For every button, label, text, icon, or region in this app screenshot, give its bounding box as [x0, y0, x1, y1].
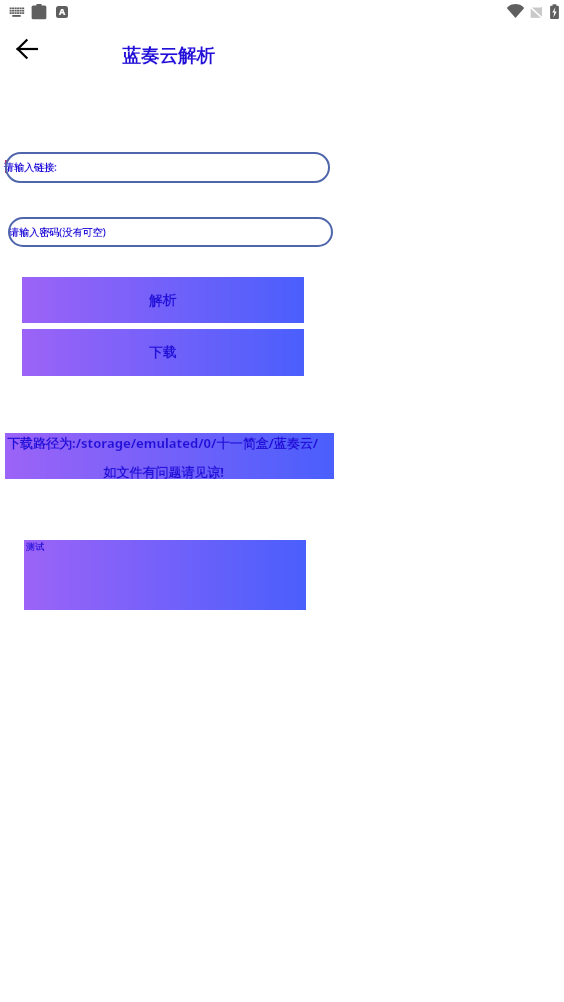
staticText: A: [59, 6, 66, 17]
staticText: 如文件有问题请见谅!: [0, 463, 328, 481]
button[interactable]: 下载: [22, 329, 304, 376]
staticText: 测试: [26, 541, 44, 552]
button[interactable]: Back: [8, 30, 46, 68]
staticText: 请输入链接:: [4, 160, 57, 174]
staticText: 下载: [149, 344, 177, 361]
staticText: 解析: [149, 292, 177, 309]
staticText: 蓝奏云解析: [122, 44, 215, 67]
button[interactable]: 请输入密码(没有可空): [8, 217, 333, 247]
staticText: 下载路径为:/storage/emulated/0/十一简盒/蓝奏云/: [7, 434, 319, 452]
button[interactable]: 请输入链接:: [5, 152, 330, 183]
staticText: 请输入密码(没有可空): [9, 225, 106, 239]
button[interactable]: 测试: [24, 540, 306, 610]
button[interactable]: 解析: [22, 277, 304, 323]
